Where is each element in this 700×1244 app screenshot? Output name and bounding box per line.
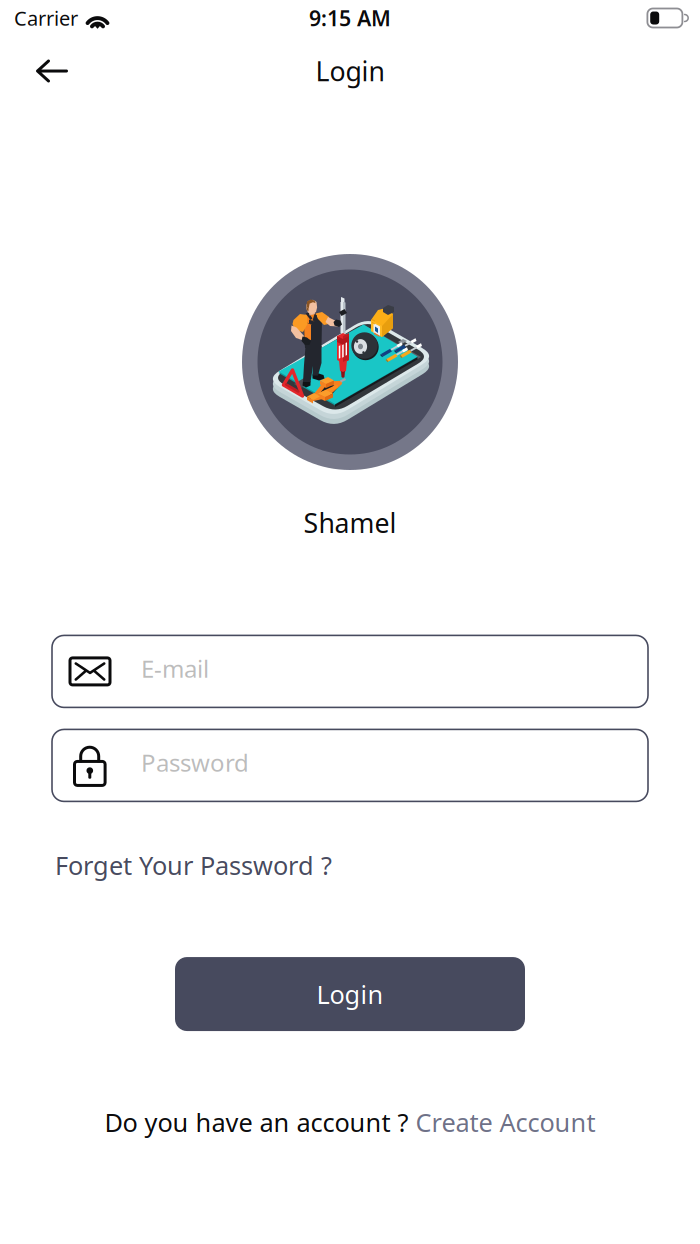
button[interactable]: Login — [175, 957, 525, 1031]
staticText: Create Account — [415, 1105, 595, 1139]
button[interactable]: Back — [23, 46, 81, 95]
staticText: Carrier — [14, 5, 78, 31]
staticText: Forget Your Password ? — [55, 848, 332, 882]
staticText: Password — [141, 746, 249, 778]
staticText: Shamel — [303, 505, 396, 540]
staticText: Do you have an account ? — [104, 1105, 408, 1139]
staticText: Login — [316, 977, 383, 1011]
button[interactable]: Create Account — [415, 1105, 595, 1139]
button[interactable]: Forget Your Password ? — [55, 848, 332, 882]
staticText: Login — [315, 53, 384, 89]
staticText: 9:15 AM — [309, 4, 391, 32]
staticText: E-mail — [141, 652, 209, 684]
